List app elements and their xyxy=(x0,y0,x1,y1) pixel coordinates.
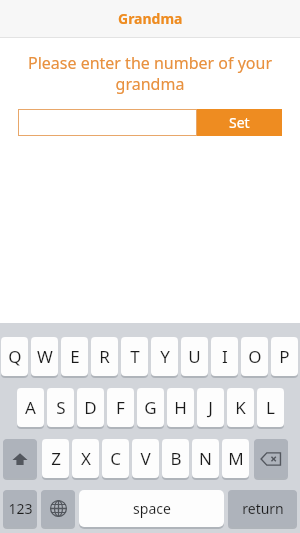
staticText: G xyxy=(144,396,157,419)
button[interactable] xyxy=(18,109,197,136)
staticText: I xyxy=(222,345,228,368)
staticText: V xyxy=(140,447,151,470)
staticText: P xyxy=(279,345,290,368)
staticText: H xyxy=(174,396,187,419)
staticText: M xyxy=(228,447,244,470)
button[interactable]: P xyxy=(271,337,298,377)
staticText: 123 xyxy=(8,499,33,518)
button[interactable]: Backspace xyxy=(254,439,288,479)
staticText: R xyxy=(99,345,110,368)
button[interactable]: D xyxy=(77,388,104,428)
button[interactable]: E xyxy=(61,337,88,377)
button[interactable]: G xyxy=(137,388,164,428)
staticText: N xyxy=(199,447,212,470)
button[interactable]: H xyxy=(167,388,194,428)
staticText: Set xyxy=(229,113,250,132)
button[interactable]: U xyxy=(181,337,208,377)
staticText: T xyxy=(130,345,140,368)
staticText: X xyxy=(81,447,91,470)
staticText: return xyxy=(242,499,284,518)
button[interactable]: C xyxy=(102,439,129,479)
button[interactable]: M xyxy=(222,439,249,479)
staticText: L xyxy=(266,396,275,419)
staticText: B xyxy=(170,447,182,470)
staticText: E xyxy=(70,345,80,368)
staticText: S xyxy=(56,396,66,419)
button[interactable]: space xyxy=(79,490,224,528)
staticText: W xyxy=(37,345,53,368)
staticText: J xyxy=(208,396,213,419)
button[interactable]: X xyxy=(72,439,99,479)
button[interactable]: A xyxy=(17,388,44,428)
button[interactable]: L xyxy=(257,388,284,428)
staticText: Q xyxy=(8,345,22,368)
staticText: A xyxy=(25,396,36,419)
button[interactable]: R xyxy=(91,337,118,377)
button[interactable]: Q xyxy=(1,337,28,377)
staticText: C xyxy=(110,447,121,470)
button[interactable]: return xyxy=(228,490,297,528)
button[interactable]: Shift xyxy=(3,439,37,479)
staticText: F xyxy=(116,396,125,419)
button[interactable]: Z xyxy=(42,439,69,479)
button[interactable]: O xyxy=(241,337,268,377)
button[interactable]: S xyxy=(47,388,74,428)
staticText: U xyxy=(188,345,201,368)
button[interactable]: Set xyxy=(197,109,282,136)
button[interactable]: Change keyboard xyxy=(41,490,75,528)
staticText: K xyxy=(235,396,246,419)
staticText: Y xyxy=(160,345,170,368)
button[interactable]: B xyxy=(162,439,189,479)
button[interactable]: I xyxy=(211,337,238,377)
staticText: O xyxy=(248,345,262,368)
staticText: D xyxy=(84,396,97,419)
button[interactable]: T xyxy=(121,337,148,377)
button[interactable]: K xyxy=(227,388,254,428)
staticText: Z xyxy=(51,447,61,470)
button[interactable]: W xyxy=(31,337,58,377)
button[interactable]: F xyxy=(107,388,134,428)
staticText: space xyxy=(133,499,171,518)
staticText: Grandma xyxy=(118,9,183,28)
button[interactable]: V xyxy=(132,439,159,479)
button[interactable]: J xyxy=(197,388,224,428)
button[interactable]: Y xyxy=(151,337,178,377)
staticText: Please enter the number of your grandma xyxy=(18,52,282,95)
button[interactable]: N xyxy=(192,439,219,479)
button[interactable]: 123 xyxy=(3,490,37,528)
